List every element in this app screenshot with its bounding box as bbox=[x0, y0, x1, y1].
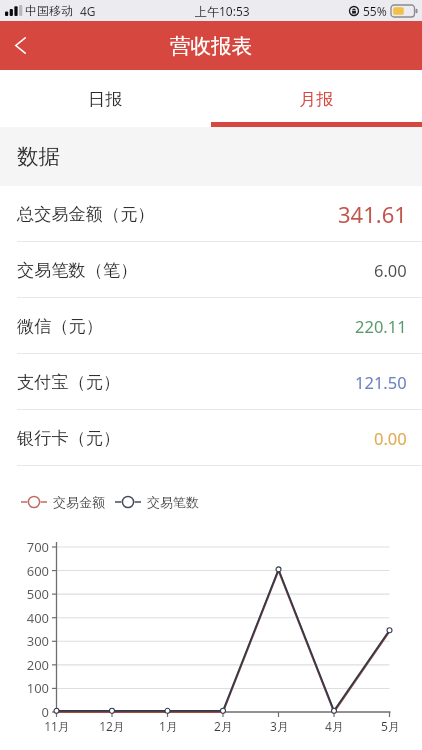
staticText: 银行卡（元） bbox=[17, 427, 121, 449]
staticText: 营收报表 bbox=[170, 33, 252, 59]
staticText: 1月 bbox=[159, 718, 178, 734]
button[interactable]: 交易笔数（笔） bbox=[0, 242, 422, 298]
staticText: 11月 bbox=[44, 718, 70, 734]
staticText: 中国移动 bbox=[25, 3, 73, 18]
staticText: 0.00 bbox=[374, 427, 407, 449]
staticText: 上午10:53 bbox=[195, 3, 250, 19]
staticText: 12月 bbox=[99, 718, 125, 734]
button[interactable]: 月报 bbox=[211, 70, 422, 127]
staticText: 5月 bbox=[381, 718, 400, 734]
button[interactable]: Back bbox=[0, 21, 41, 70]
staticText: 3月 bbox=[270, 718, 289, 734]
staticText: 100 bbox=[26, 679, 49, 697]
button[interactable]: 银行卡（元） bbox=[0, 410, 422, 466]
staticText: 500 bbox=[26, 585, 49, 603]
staticText: 日报 bbox=[88, 88, 123, 110]
staticText: 300 bbox=[26, 632, 49, 650]
staticText: 微信（元） bbox=[17, 315, 103, 337]
staticText: 月报 bbox=[299, 88, 334, 110]
staticText: 4G bbox=[80, 3, 96, 19]
button[interactable]: 支付宝（元） bbox=[0, 354, 422, 410]
staticText: 341.61 bbox=[338, 199, 407, 229]
staticText: 200 bbox=[26, 656, 49, 674]
staticText: 2月 bbox=[214, 718, 233, 734]
button[interactable]: 微信（元） bbox=[0, 298, 422, 354]
staticText: 55% bbox=[363, 3, 387, 19]
staticText: 交易笔数（笔） bbox=[17, 259, 138, 281]
staticText: 121.50 bbox=[355, 371, 407, 393]
staticText: 6.00 bbox=[374, 259, 407, 281]
staticText: 220.11 bbox=[355, 315, 407, 337]
staticText: 支付宝（元） bbox=[17, 371, 121, 393]
button[interactable]: 日报 bbox=[0, 70, 211, 127]
button[interactable]: 总交易金额（元） bbox=[0, 186, 422, 242]
staticText: 600 bbox=[26, 562, 49, 580]
staticText: 数据 bbox=[17, 143, 60, 170]
staticText: 700 bbox=[26, 538, 49, 556]
staticText: 交易笔数 bbox=[147, 494, 199, 510]
staticText: 总交易金额（元） bbox=[17, 203, 155, 225]
staticText: 400 bbox=[26, 609, 49, 627]
staticText: 交易金额 bbox=[53, 494, 105, 510]
staticText: 0 bbox=[41, 703, 49, 721]
staticText: 4月 bbox=[325, 718, 344, 734]
